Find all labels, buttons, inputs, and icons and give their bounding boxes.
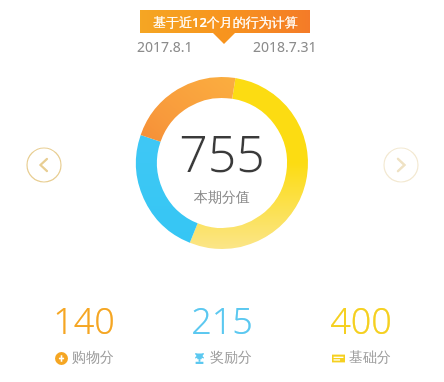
button[interactable]: 基于近12个月的行为计算 — [140, 10, 310, 33]
staticText: 2018.7.31 — [253, 37, 317, 56]
staticText: 基础分 — [349, 349, 391, 367]
button[interactable]: 上一个 — [26, 147, 62, 183]
button[interactable]: 140 — [29, 296, 139, 367]
staticText: 2017.8.1 — [137, 37, 193, 56]
button[interactable]: 下一个 — [383, 147, 419, 183]
staticText: 755 — [179, 119, 265, 187]
staticText: 基于近12个月的行为计算 — [153, 13, 298, 31]
staticText: 购物分 — [72, 349, 114, 367]
staticText: 140 — [53, 296, 115, 345]
staticText: 奖励分 — [210, 349, 252, 367]
staticText: 本期分值 — [194, 189, 250, 207]
button[interactable]: 215 — [167, 296, 277, 367]
staticText: 215 — [191, 296, 253, 345]
staticText: 400 — [330, 296, 392, 345]
button[interactable]: 400 — [306, 296, 416, 367]
